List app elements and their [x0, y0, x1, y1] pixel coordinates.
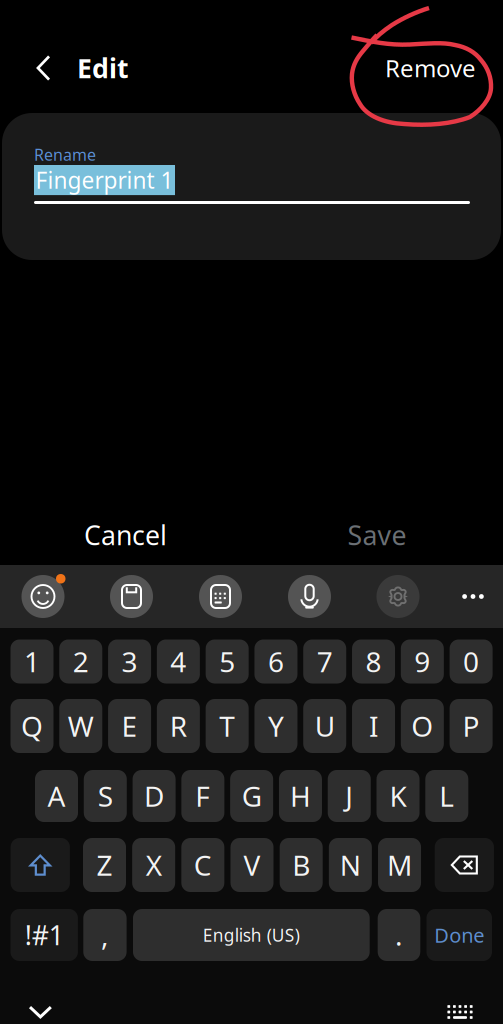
- staticText: S: [98, 777, 113, 815]
- button[interactable]: Y: [254, 699, 297, 753]
- button[interactable]: R: [157, 699, 200, 753]
- button[interactable]: Edit: [68, 40, 129, 96]
- staticText: W: [68, 707, 94, 745]
- staticText: U: [315, 707, 335, 745]
- button[interactable]: Save: [251, 505, 503, 565]
- button[interactable]: Stickers: [199, 575, 242, 618]
- button[interactable]: 3: [108, 639, 151, 683]
- button[interactable]: K: [376, 770, 419, 822]
- staticText: L: [439, 777, 454, 815]
- staticText: Fingerprint 1: [35, 165, 173, 195]
- button[interactable]: .: [378, 909, 420, 961]
- staticText: Z: [96, 846, 112, 884]
- button[interactable]: W: [59, 699, 102, 753]
- button[interactable]: X: [132, 838, 175, 892]
- staticText: C: [194, 846, 212, 884]
- button[interactable]: Shift: [11, 838, 70, 892]
- button[interactable]: Cancel: [0, 505, 251, 565]
- staticText: K: [389, 777, 406, 815]
- staticText: I: [369, 707, 378, 745]
- staticText: O: [411, 707, 433, 745]
- staticText: V: [243, 846, 260, 884]
- staticText: Q: [21, 707, 43, 745]
- staticText: P: [463, 707, 480, 745]
- staticText: R: [170, 707, 187, 745]
- staticText: .: [395, 916, 403, 954]
- staticText: 6: [268, 643, 284, 680]
- button[interactable]: 4: [157, 639, 200, 683]
- button[interactable]: J: [328, 770, 371, 822]
- staticText: Y: [268, 707, 284, 745]
- button[interactable]: V: [230, 838, 273, 892]
- button[interactable]: 7: [303, 639, 346, 683]
- staticText: Rename: [34, 144, 96, 165]
- button[interactable]: A: [35, 770, 78, 822]
- staticText: 2: [73, 643, 89, 680]
- button[interactable]: B: [280, 838, 323, 892]
- staticText: 7: [317, 643, 333, 680]
- staticText: G: [242, 777, 262, 815]
- staticText: H: [290, 777, 311, 815]
- staticText: Remove: [385, 52, 476, 84]
- button[interactable]: D: [133, 770, 176, 822]
- button[interactable]: Voice input: [288, 575, 331, 618]
- button[interactable]: N: [329, 838, 372, 892]
- button[interactable]: P: [450, 699, 493, 753]
- button[interactable]: E: [108, 699, 151, 753]
- staticText: Done: [434, 922, 484, 948]
- button[interactable]: T: [206, 699, 249, 753]
- button[interactable]: O: [401, 699, 444, 753]
- button[interactable]: H: [279, 770, 322, 822]
- button[interactable]: U: [303, 699, 346, 753]
- staticText: 8: [365, 643, 381, 680]
- button[interactable]: Clipboard: [110, 575, 153, 618]
- staticText: 3: [122, 643, 138, 680]
- button[interactable]: 9: [401, 639, 444, 683]
- button[interactable]: 1: [10, 639, 53, 683]
- button[interactable]: Remove: [385, 40, 503, 96]
- button[interactable]: Backspace: [435, 838, 494, 892]
- button[interactable]: C: [181, 838, 224, 892]
- staticText: M: [387, 846, 412, 884]
- staticText: E: [122, 707, 138, 745]
- staticText: J: [345, 777, 353, 815]
- staticText: 0: [463, 643, 479, 680]
- button[interactable]: Q: [10, 699, 53, 753]
- button[interactable]: 0: [450, 639, 493, 683]
- staticText: A: [47, 777, 65, 815]
- staticText: 1: [24, 643, 40, 680]
- button[interactable]: S: [84, 770, 127, 822]
- button[interactable]: L: [425, 770, 468, 822]
- staticText: F: [195, 777, 210, 815]
- staticText: B: [292, 846, 310, 884]
- staticText: Cancel: [84, 517, 167, 553]
- button[interactable]: Done: [426, 909, 492, 961]
- staticText: English (US): [203, 923, 300, 946]
- staticText: 9: [414, 643, 430, 680]
- button[interactable]: G: [230, 770, 273, 822]
- button[interactable]: 5: [206, 639, 249, 683]
- staticText: !#1: [25, 917, 64, 953]
- button[interactable]: Hide keyboard: [9, 991, 71, 1024]
- button[interactable]: 8: [352, 639, 395, 683]
- button[interactable]: Emoji: [21, 575, 64, 618]
- staticText: Save: [347, 517, 406, 553]
- staticText: Edit: [77, 50, 129, 86]
- staticText: T: [219, 707, 235, 745]
- button[interactable]: 6: [254, 639, 297, 683]
- button[interactable]: Switch keyboard: [429, 991, 491, 1024]
- button[interactable]: Back: [19, 40, 68, 96]
- button[interactable]: 2: [59, 639, 102, 683]
- staticText: 4: [170, 643, 186, 680]
- button[interactable]: I: [352, 699, 395, 753]
- button[interactable]: ,: [83, 909, 127, 961]
- button[interactable]: M: [378, 838, 421, 892]
- staticText: 5: [219, 643, 235, 680]
- button[interactable]: More options: [448, 575, 498, 618]
- button[interactable]: English (US): [133, 909, 370, 961]
- button[interactable]: !#1: [10, 909, 78, 961]
- button[interactable]: Z: [83, 838, 126, 892]
- button[interactable]: F: [181, 770, 224, 822]
- button[interactable]: Keyboard settings: [376, 575, 419, 618]
- staticText: X: [146, 846, 162, 884]
